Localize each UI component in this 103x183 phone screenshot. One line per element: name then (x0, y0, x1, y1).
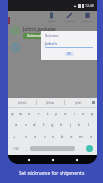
button[interactable]: q (8, 108, 16, 119)
staticText: z (25, 134, 27, 139)
button[interactable]: + (8, 130, 21, 142)
button[interactable]: y (52, 108, 61, 119)
button[interactable]: a (12, 119, 21, 130)
button[interactable]: x (85, 130, 97, 142)
button[interactable]: w (16, 108, 25, 119)
button[interactable]: d (30, 119, 39, 130)
button[interactable]: ?123 (9, 142, 23, 155)
button[interactable]: Space (30, 146, 75, 151)
button[interactable]: i (70, 108, 79, 119)
staticText: . (78, 146, 79, 151)
staticText: y (55, 111, 58, 116)
button[interactable]: j (66, 119, 75, 130)
staticText: r (38, 111, 40, 116)
staticText: x (34, 134, 37, 139)
staticText: b (61, 134, 64, 139)
button[interactable]: Recents (73, 156, 80, 163)
staticText: l (88, 122, 90, 127)
staticText: q (11, 111, 14, 116)
button[interactable]: h (57, 119, 66, 130)
button[interactable]: john (65, 98, 92, 107)
staticText: , (26, 146, 27, 151)
staticText: a (15, 122, 18, 127)
button[interactable]: Johns (37, 98, 64, 107)
button[interactable]: Delivered (27, 34, 42, 38)
button[interactable]: l (84, 119, 93, 130)
staticText: + (13, 134, 16, 139)
staticText: 12:48 (85, 3, 94, 8)
staticText: w (19, 111, 23, 116)
button[interactable]: OK (67, 52, 72, 56)
button[interactable]: m (76, 130, 85, 142)
staticText: OK (67, 52, 72, 56)
staticText: John's (18, 101, 27, 105)
button[interactable]: Nickname (62, 12, 77, 23)
staticText: John's package (23, 26, 56, 32)
button[interactable]: s (21, 119, 30, 130)
staticText: o (82, 111, 85, 116)
staticText: n (70, 134, 73, 139)
staticText: Nickname (45, 34, 59, 38)
staticText: c (44, 134, 46, 139)
staticText: u (64, 111, 67, 116)
button[interactable]: , (23, 142, 30, 155)
staticText: p (91, 111, 94, 116)
button[interactable]: o (79, 108, 88, 119)
staticText: m (79, 134, 83, 139)
staticText: s (25, 122, 27, 127)
staticText: i (74, 111, 76, 116)
button[interactable]: x (31, 130, 40, 142)
staticText: d (33, 122, 36, 127)
button[interactable]: n (67, 130, 76, 142)
staticText: t (47, 111, 49, 116)
staticText: ?123 (13, 147, 19, 151)
staticText: john (75, 101, 82, 105)
button[interactable]: Home (49, 156, 56, 163)
staticText: h (60, 122, 63, 127)
button[interactable]: c (40, 130, 49, 142)
staticText: e (28, 111, 31, 116)
staticText: Johns (46, 101, 55, 105)
button[interactable]: Notify me (80, 12, 95, 23)
button[interactable]: g (48, 119, 57, 130)
button[interactable]: e (25, 108, 34, 119)
button[interactable]: k (75, 119, 84, 130)
button[interactable]: Delete (44, 12, 59, 23)
button[interactable]: Back (25, 156, 32, 163)
staticText: v (52, 134, 55, 139)
button[interactable]: p (88, 108, 97, 119)
staticText: x (90, 134, 93, 139)
staticText: j (70, 122, 72, 127)
staticText: Delivered (27, 34, 42, 38)
staticText: f (43, 122, 45, 127)
staticText: Delete (48, 20, 55, 23)
button[interactable]: t (43, 108, 52, 119)
staticText: k (78, 122, 81, 127)
staticText: g (51, 122, 54, 127)
button[interactable]: b (58, 130, 67, 142)
button[interactable]: v (49, 130, 58, 142)
button[interactable]: r (34, 108, 43, 119)
staticText: Nickname (64, 20, 75, 23)
button[interactable]: Enter (86, 145, 93, 152)
button[interactable]: z (21, 130, 31, 142)
button[interactable]: John's (8, 98, 36, 107)
staticText: Notify me (82, 20, 93, 23)
staticText: John's (45, 40, 58, 46)
button[interactable]: u (61, 108, 70, 119)
button[interactable]: f (39, 119, 48, 130)
staticText: Set nickname for shipments (0, 170, 103, 177)
